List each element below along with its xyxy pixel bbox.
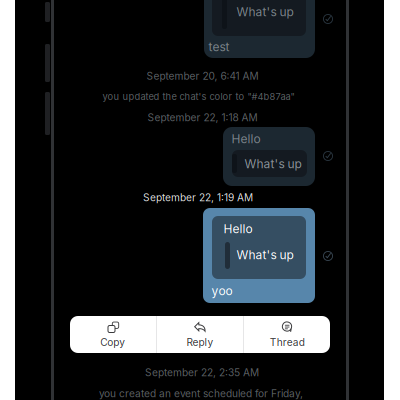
staticText: September 20, 6:41 AM [146, 70, 258, 82]
staticText: Copy [100, 336, 125, 348]
staticText: you created an event scheduled for Frida… [99, 387, 303, 400]
staticText: Hello [223, 222, 252, 236]
staticText: September 22, 1:19 AM [143, 191, 253, 204]
staticText: September 22, 1:18 AM [147, 111, 257, 124]
staticText: What's up [236, 5, 293, 19]
staticText: What's up [244, 157, 301, 171]
staticText: you updated the chat's color to "#4b87aa… [102, 91, 294, 102]
staticText: September 22, 2:35 AM [145, 366, 259, 379]
staticText: Hello [231, 132, 260, 146]
staticText: What's up [236, 248, 293, 262]
staticText: Thread [270, 336, 305, 348]
staticText: test [208, 40, 229, 54]
button[interactable]: Copy [70, 316, 156, 353]
button[interactable]: Thread [244, 316, 330, 353]
button[interactable]: Reply [157, 316, 243, 353]
staticText: yoo [211, 284, 232, 298]
staticText: Reply [186, 336, 213, 348]
